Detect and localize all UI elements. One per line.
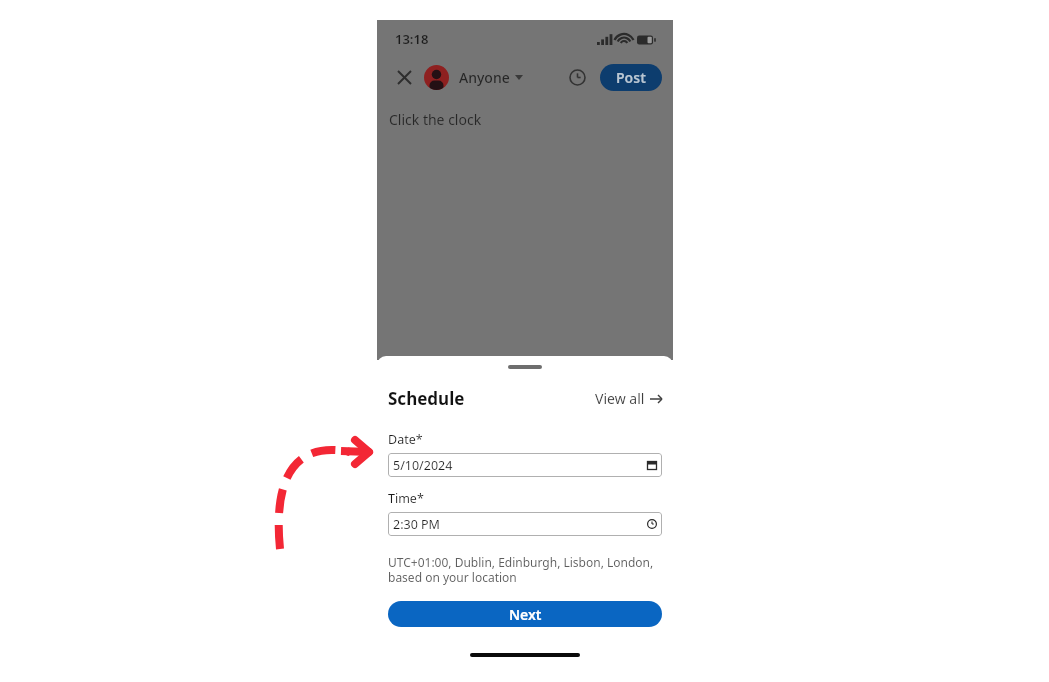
- button[interactable]: Next: [388, 601, 662, 627]
- staticText: 2:30 PM: [393, 516, 440, 533]
- staticText: 5/10/2024: [393, 457, 453, 474]
- staticText: Next: [509, 605, 542, 624]
- staticText: UTC+01:00, Dublin, Edinburgh, Lisbon, Lo…: [388, 554, 654, 585]
- button[interactable]: Post: [600, 64, 662, 91]
- button[interactable]: 5/10/2024: [388, 453, 662, 477]
- staticText: Time*: [388, 490, 424, 507]
- button[interactable]: Anyone: [424, 65, 523, 90]
- button[interactable]: 2:30 PM: [388, 512, 662, 536]
- staticText: Post: [616, 68, 646, 87]
- staticText: Schedule: [388, 387, 465, 410]
- staticText: Anyone: [459, 68, 510, 87]
- staticText: 13:18: [395, 30, 429, 48]
- button[interactable]: Close: [391, 64, 417, 90]
- staticText: Date*: [388, 431, 423, 448]
- button[interactable]: View all: [595, 389, 662, 408]
- staticText: View all: [595, 389, 645, 408]
- button[interactable]: Schedule post: [563, 63, 591, 91]
- staticText: Click the clock: [389, 110, 482, 129]
